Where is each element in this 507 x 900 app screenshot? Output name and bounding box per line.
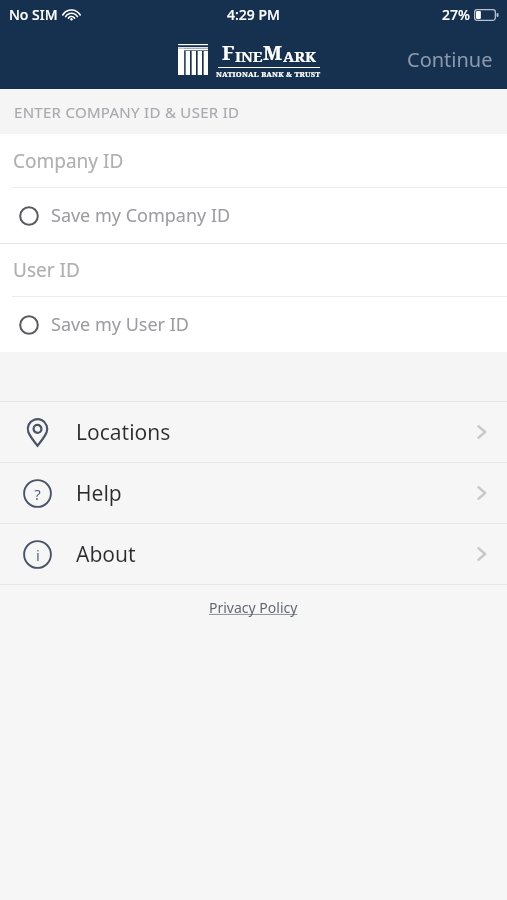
staticText: ARK <box>283 46 316 66</box>
staticText: Continue <box>407 46 493 73</box>
staticText: M <box>263 39 283 66</box>
staticText: F <box>222 39 235 66</box>
staticText: Save my User ID <box>51 312 189 337</box>
staticText: INE <box>235 46 263 66</box>
staticText: About <box>76 540 136 569</box>
button[interactable]: User ID <box>0 244 507 296</box>
staticText: User ID <box>13 257 80 283</box>
button[interactable]: Company ID <box>0 134 507 187</box>
staticText: ? <box>34 484 41 504</box>
staticText: Locations <box>76 418 171 447</box>
staticText: ENTER COMPANY ID & USER ID <box>14 102 240 122</box>
button[interactable]: Privacy Policy <box>203 592 304 623</box>
button[interactable]: Save my Company ID <box>0 188 507 243</box>
other: Locations <box>23 418 52 447</box>
staticText: Save my Company ID <box>51 203 231 228</box>
staticText: 27% <box>442 5 470 24</box>
button[interactable]: About <box>0 524 507 584</box>
other: Help <box>23 479 52 508</box>
staticText: Privacy Policy <box>209 598 298 617</box>
staticText: NATIONAL BANK & TRUST <box>216 69 321 79</box>
staticText: Help <box>76 479 122 508</box>
other: About <box>23 540 52 569</box>
staticText: Company ID <box>13 148 124 174</box>
staticText: No SIM <box>9 5 58 24</box>
button[interactable]: Locations <box>0 402 507 462</box>
staticText: i <box>36 545 40 565</box>
staticText: 4:29 PM <box>227 5 280 24</box>
button[interactable]: Save my User ID <box>0 297 507 352</box>
button[interactable]: Continue <box>393 36 507 83</box>
button[interactable]: Help <box>0 463 507 523</box>
